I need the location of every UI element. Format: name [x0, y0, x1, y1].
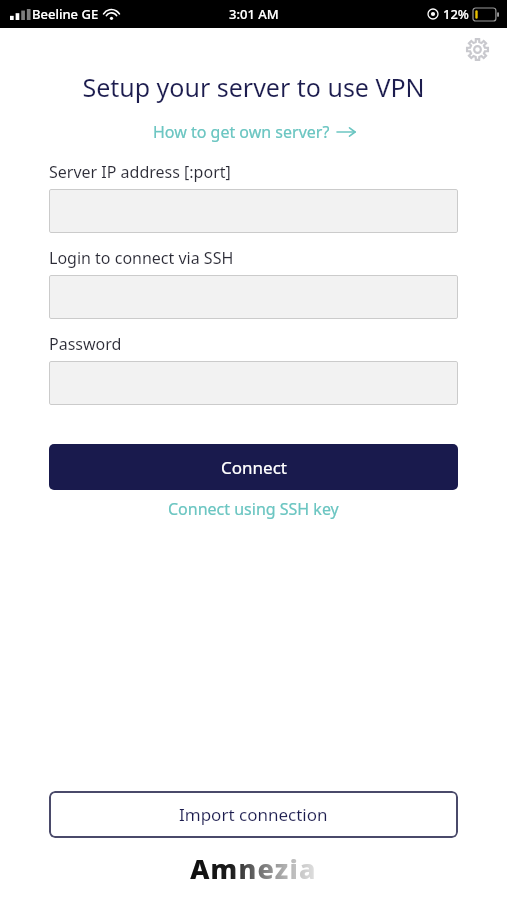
button[interactable]: Connect	[49, 444, 458, 490]
staticText: Setup your server to use VPN	[0, 70, 507, 104]
button[interactable]: Login to connect via SSH	[49, 275, 458, 319]
staticText: 3:01 AM	[229, 5, 279, 23]
staticText: Import connection	[179, 803, 328, 826]
button[interactable]: How to get own server?	[147, 119, 361, 145]
button[interactable]: Import connection	[49, 791, 458, 838]
staticText: How to get own server?	[153, 121, 330, 143]
button[interactable]: Server IP address [:port]	[49, 189, 458, 233]
staticText: Login to connect via SSH	[49, 247, 234, 269]
button[interactable]: Connect using SSH key	[160, 495, 347, 523]
staticText: Beeline GE	[32, 5, 99, 23]
staticText: Password	[49, 333, 122, 355]
button[interactable]: Password	[49, 361, 458, 405]
staticText: Server IP address [:port]	[49, 161, 231, 183]
button[interactable]: Settings	[459, 31, 495, 67]
staticText: 12%	[443, 5, 469, 23]
staticText: Connect	[221, 456, 287, 479]
staticText: Amnezia	[190, 850, 317, 882]
